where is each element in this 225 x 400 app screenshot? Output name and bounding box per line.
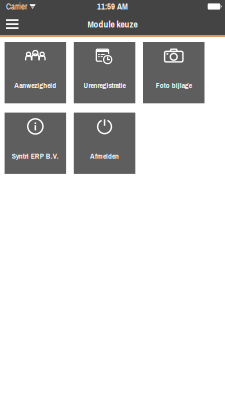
button[interactable]: Foto bijlage (143, 42, 204, 103)
staticText: Foto bijlage (156, 80, 192, 90)
staticText: Aanwezigheid (14, 80, 56, 90)
staticText: Syntri ERP B.V. (12, 151, 59, 161)
staticText: Urenregistratie (83, 80, 125, 90)
button[interactable]: Syntri ERP B.V. (5, 113, 66, 174)
button[interactable]: Aanwezigheid (5, 42, 66, 103)
staticText: Afmelden (90, 151, 119, 161)
staticText: 11:59 AM (97, 1, 128, 12)
staticText: Module keuze (87, 18, 137, 30)
button[interactable]: Afmelden (74, 113, 135, 174)
staticText: Carrier (6, 1, 27, 12)
button[interactable]: Urenregistratie (74, 42, 135, 103)
button[interactable]: Menu (0, 13, 24, 35)
